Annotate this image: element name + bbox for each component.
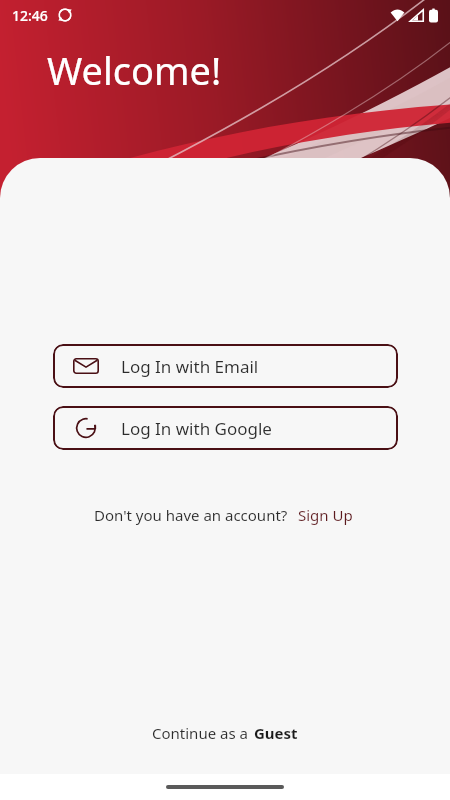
staticText: 12:46	[12, 6, 48, 25]
button[interactable]: Log In with Email	[53, 344, 398, 388]
staticText: Guest	[254, 723, 298, 743]
button[interactable]: Sign Up	[294, 502, 357, 528]
staticText: Log In with Email	[121, 355, 259, 378]
button[interactable]: Continue as a	[142, 717, 308, 749]
button[interactable]: Log In with Google	[53, 406, 398, 450]
staticText: Don't you have an account?	[94, 505, 288, 525]
staticText: Log In with Google	[121, 417, 272, 440]
staticText: Welcome!	[47, 44, 222, 96]
staticText: Sign Up	[298, 505, 353, 525]
staticText: Continue as a	[152, 723, 248, 743]
